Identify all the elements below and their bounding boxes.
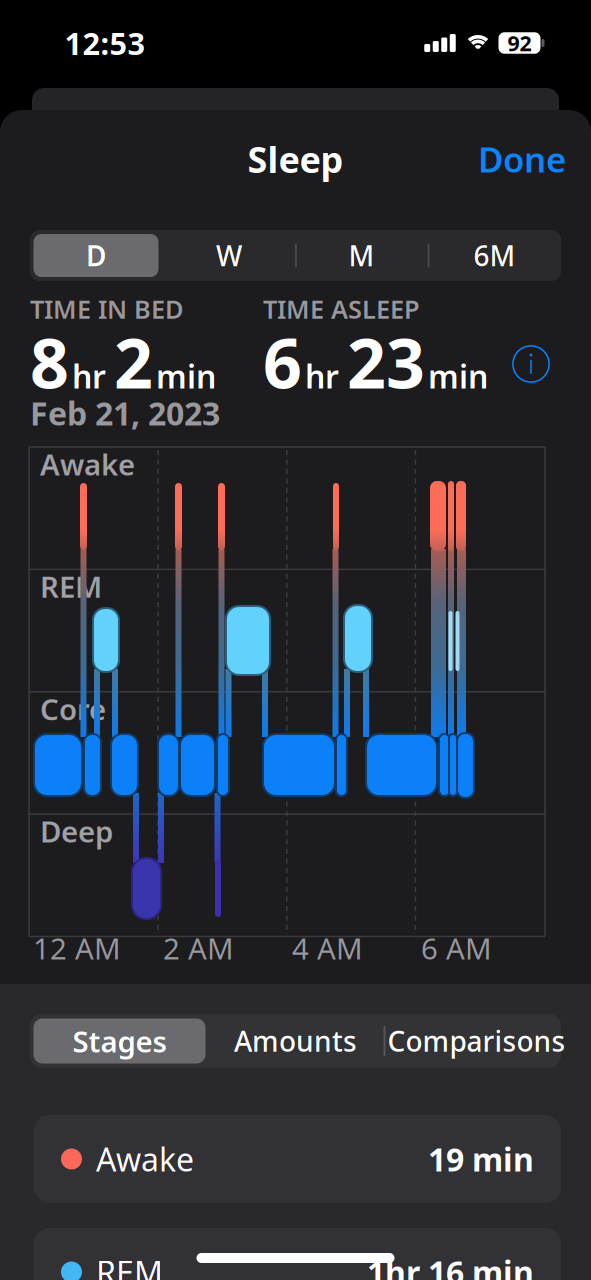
button[interactable]: Comparisons [376, 1018, 576, 1063]
staticText: 6 [263, 317, 302, 407]
button[interactable]: Stages [33, 1018, 205, 1063]
staticText: Stages [72, 1021, 166, 1060]
staticText: REM [96, 1251, 163, 1280]
staticText: Done [478, 136, 566, 182]
staticText: Core [40, 689, 106, 728]
staticText: 19 min [428, 1138, 534, 1180]
staticText: 92 [507, 29, 531, 57]
staticText: 4 AM [292, 928, 363, 967]
staticText: 2 [114, 317, 153, 407]
staticText: 8 [30, 317, 69, 407]
staticText: Awake [96, 1138, 194, 1180]
button[interactable]: REM [34, 1228, 561, 1280]
staticText: Sleep [247, 135, 343, 183]
staticText: Comparisons [387, 1022, 565, 1060]
button[interactable]: D [33, 234, 158, 277]
staticText: min [156, 355, 216, 397]
button[interactable]: Done [478, 136, 566, 182]
staticText: 6 AM [421, 928, 492, 967]
staticText: 23 [347, 317, 425, 407]
staticText: Feb 21, 2023 [30, 392, 220, 434]
staticText: TIME ASLEEP [263, 292, 420, 326]
staticText: REM [40, 567, 102, 606]
staticText: min [428, 355, 488, 397]
staticText: 6M [473, 237, 515, 274]
staticText: Awake [40, 444, 135, 483]
staticText: hr [305, 355, 339, 397]
button[interactable]: Awake [34, 1115, 561, 1203]
staticText: TIME IN BED [30, 292, 184, 326]
staticText: 12:53 [64, 23, 145, 63]
staticText: M [349, 237, 375, 274]
staticText: 2 AM [163, 928, 234, 967]
button[interactable]: Amounts [215, 1018, 375, 1063]
staticText: 12 AM [33, 928, 121, 967]
staticText: Deep [40, 812, 113, 851]
staticText: W [216, 237, 242, 274]
button[interactable]: M [307, 234, 417, 277]
button[interactable]: 6M [439, 234, 549, 277]
staticText: 1hr 16 min [367, 1251, 534, 1280]
staticText: hr [72, 355, 106, 397]
staticText: D [86, 237, 106, 274]
button[interactable]: W [174, 234, 284, 277]
staticText: Amounts [234, 1022, 357, 1060]
button[interactable]: About Sleep [508, 341, 554, 387]
